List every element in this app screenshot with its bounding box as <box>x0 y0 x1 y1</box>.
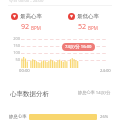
staticText: 50 <box>8 57 20 62</box>
staticText: 150 <box>8 43 20 48</box>
staticText: 最高心率 <box>20 13 42 20</box>
staticText: 200 <box>8 36 20 41</box>
staticText: 今日 00:00 - 24:00 <box>9 0 44 4</box>
staticText: 92 <box>21 21 30 31</box>
staticText: 100 <box>8 50 20 55</box>
staticText: 74次/分 16:00 <box>65 44 92 50</box>
staticText: 最低心率 <box>77 13 99 20</box>
staticText: BPM <box>31 25 41 31</box>
staticText: 00:00 <box>19 68 30 74</box>
staticText: 静息心率 <box>9 114 27 120</box>
staticText: 52 <box>78 21 87 31</box>
staticText: BPM <box>88 25 98 31</box>
staticText: 静息心率 14次/分 <box>78 90 111 96</box>
staticText: 心率数据分析 <box>10 90 49 98</box>
staticText: 24:00 <box>100 68 111 74</box>
staticText: 26% <box>100 114 109 120</box>
